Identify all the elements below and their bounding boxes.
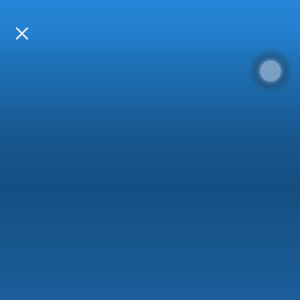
button[interactable]: Close <box>4 16 39 51</box>
button[interactable]: Record <box>247 48 293 94</box>
